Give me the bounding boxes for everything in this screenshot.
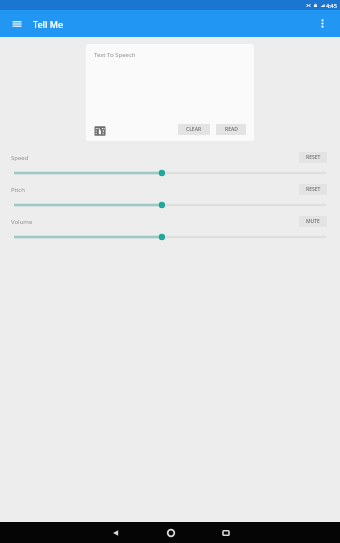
staticText: CLEAR	[186, 126, 202, 133]
button[interactable]: More options	[309, 10, 336, 37]
staticText: READ	[225, 126, 238, 133]
staticText: Speed	[11, 154, 29, 162]
button[interactable]: Home	[160, 522, 181, 543]
staticText: Pitch	[11, 186, 25, 194]
staticText: Tell Me	[33, 18, 64, 30]
staticText: Text To Speech	[94, 51, 136, 59]
button[interactable]: MUTE	[299, 216, 327, 227]
button[interactable]: CLEAR	[178, 124, 210, 135]
staticText: MUTE	[306, 218, 320, 225]
button[interactable]: Back	[105, 522, 126, 543]
staticText: Volume	[11, 218, 33, 226]
button[interactable]: RESET	[299, 152, 327, 163]
staticText: RESET	[306, 186, 321, 193]
button[interactable]: Recent apps	[215, 522, 236, 543]
button[interactable]: Open navigation menu	[3, 10, 30, 37]
staticText: RESET	[306, 154, 321, 161]
staticText: 4:45	[326, 2, 337, 9]
button[interactable]: READ	[216, 124, 246, 135]
button[interactable]: RESET	[299, 184, 327, 195]
button[interactable]: Keyboard	[93, 124, 107, 138]
